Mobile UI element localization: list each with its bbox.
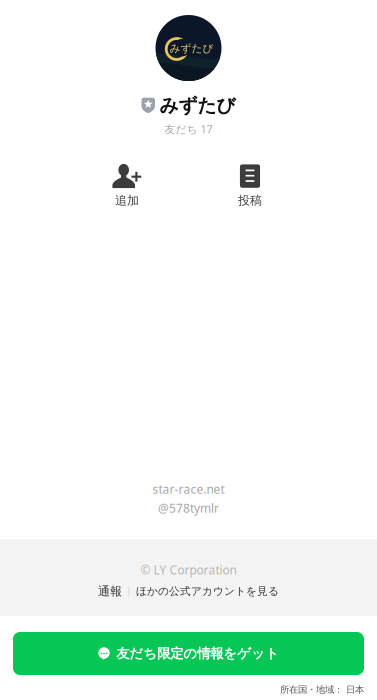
staticText: みずたび (159, 94, 235, 117)
button[interactable]: 通報 (98, 584, 122, 599)
button[interactable]: 投稿 (219, 164, 281, 208)
button[interactable]: ほかの公式アカウントを見る (136, 585, 279, 598)
staticText: 通報 (98, 584, 122, 599)
staticText: 追加 (115, 193, 139, 208)
button[interactable]: 友だち限定の情報をゲット (13, 632, 364, 675)
staticText: @578tymlr (158, 500, 219, 516)
staticText: 投稿 (238, 193, 262, 208)
button[interactable]: 追加 (96, 164, 158, 208)
staticText: © LY Corporation (140, 562, 236, 578)
staticText: 友だち限定の情報をゲット (116, 645, 279, 662)
staticText: 所在国・地域： 日本 (280, 684, 364, 695)
staticText: star-race.net (152, 481, 224, 497)
staticText: 友だち 17 (164, 122, 212, 136)
staticText: ほかの公式アカウントを見る (136, 585, 279, 598)
staticText: みずたび (169, 42, 213, 55)
